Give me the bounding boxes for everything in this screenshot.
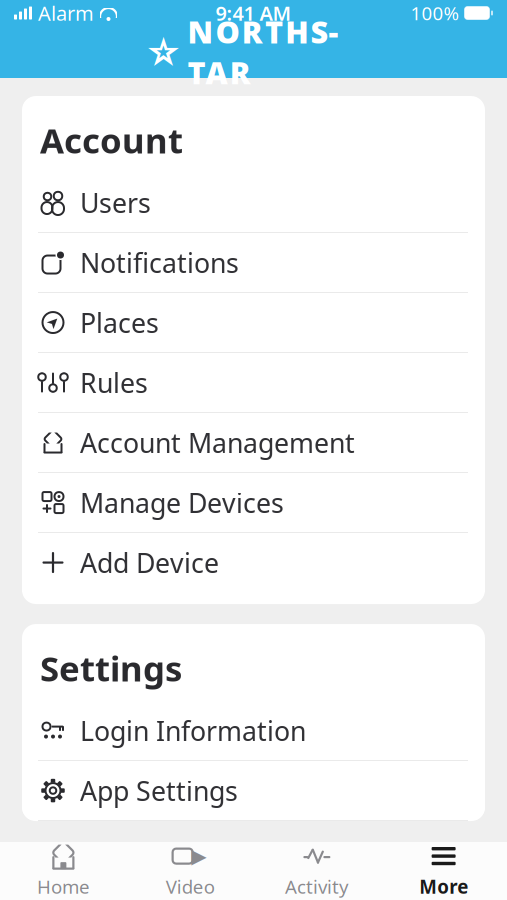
staticText: Account bbox=[40, 117, 183, 163]
staticText: App Settings bbox=[80, 773, 238, 808]
button[interactable]: Activity bbox=[253, 834, 380, 900]
staticText: ★ bbox=[155, 42, 171, 62]
button[interactable]: Notifications bbox=[22, 233, 485, 292]
staticText: Places bbox=[80, 305, 159, 340]
staticText: About bbox=[40, 862, 146, 900]
staticText: NORTHSTAR bbox=[187, 11, 359, 93]
staticText: ➤ bbox=[47, 314, 59, 331]
staticText: Notifications bbox=[80, 245, 239, 280]
staticText: Rules bbox=[80, 365, 148, 400]
button[interactable]: App Settings bbox=[22, 761, 485, 820]
button[interactable]: More bbox=[380, 834, 507, 900]
staticText: Add Device bbox=[80, 545, 219, 580]
button[interactable]: Account Management bbox=[22, 413, 485, 472]
staticText: Home bbox=[37, 874, 90, 899]
staticText: More bbox=[419, 874, 468, 899]
staticText: Manage Devices bbox=[80, 485, 284, 520]
staticText: ▶ bbox=[191, 845, 206, 867]
staticText: Activity bbox=[285, 874, 349, 899]
staticText: Video bbox=[166, 874, 215, 899]
button[interactable]: Add Device bbox=[22, 533, 485, 592]
staticText: ★ bbox=[145, 29, 181, 75]
button[interactable]: ▶ bbox=[127, 834, 254, 900]
button[interactable]: Home bbox=[0, 834, 127, 900]
staticText: Account Management bbox=[80, 425, 355, 460]
button[interactable]: Login Information bbox=[22, 701, 485, 760]
button[interactable]: ➤ bbox=[22, 293, 485, 352]
button[interactable]: Users bbox=[22, 173, 485, 232]
staticText: Users bbox=[80, 185, 151, 220]
button[interactable]: Manage Devices bbox=[22, 473, 485, 532]
staticText: 100% bbox=[410, 1, 459, 25]
staticText: Alarm bbox=[38, 0, 94, 26]
staticText: 9:41 AM bbox=[215, 0, 291, 26]
button[interactable]: Rules bbox=[22, 353, 485, 412]
staticText: Settings bbox=[40, 645, 182, 691]
staticText: Login Information bbox=[80, 713, 306, 748]
